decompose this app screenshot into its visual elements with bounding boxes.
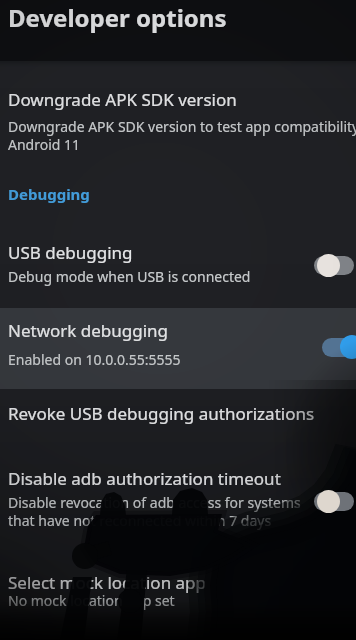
staticText: Disable adb authorization timeout	[8, 467, 281, 490]
staticText: Revoke USB debugging authorizations	[8, 402, 315, 425]
button[interactable]: Downgrade APK SDK version	[0, 80, 356, 172]
button[interactable]	[314, 490, 356, 513]
staticText: No mock location app set	[8, 591, 175, 610]
staticText: Select mock location app	[8, 571, 206, 594]
button[interactable]: Select mock location app	[0, 562, 356, 620]
button[interactable]: Network debugging	[0, 308, 356, 389]
staticText: Debug mode when USB is connected	[8, 267, 251, 286]
staticText: Developer options	[8, 1, 227, 34]
button[interactable]: Revoke USB debugging authorizations	[0, 389, 356, 437]
button[interactable]	[314, 254, 356, 277]
button[interactable]: Disable adb authorization timeout	[0, 455, 356, 535]
staticText: Downgrade APK SDK version to test app co…	[8, 117, 356, 136]
staticText: Debugging	[8, 184, 90, 204]
staticText: USB debugging	[8, 241, 133, 264]
staticText: Android 11	[8, 135, 81, 154]
staticText: Network debugging	[8, 319, 169, 342]
staticText: that have not reconnected within 7 days	[8, 511, 272, 530]
staticText: Downgrade APK SDK version	[8, 88, 237, 111]
button[interactable]	[322, 335, 356, 359]
staticText: Disable revocation of adb access for sys…	[8, 493, 301, 512]
staticText: Enabled on 10.0.0.55:5555	[8, 350, 181, 369]
button[interactable]: USB debugging	[0, 232, 356, 308]
